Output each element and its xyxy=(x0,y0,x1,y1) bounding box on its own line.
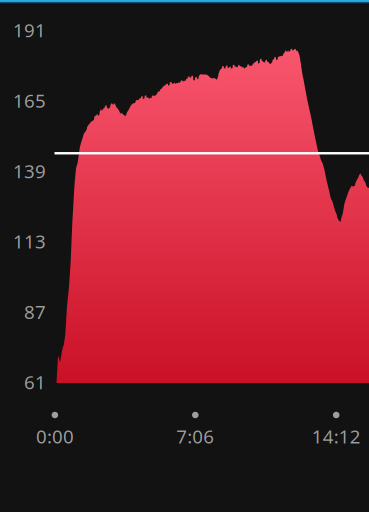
staticText: 61 xyxy=(24,370,46,394)
staticText: 113 xyxy=(13,229,46,254)
staticText: 87 xyxy=(24,299,46,324)
staticText: 165 xyxy=(13,88,46,113)
staticText: 14:12 xyxy=(312,424,361,449)
staticText: 7:06 xyxy=(176,424,214,449)
staticText: 139 xyxy=(13,158,46,183)
staticText: 191 xyxy=(13,18,46,42)
staticText: 0:00 xyxy=(36,424,74,449)
